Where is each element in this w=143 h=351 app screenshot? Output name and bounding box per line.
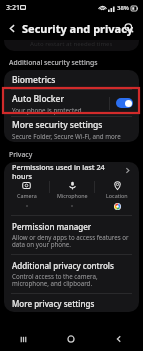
staticText: Permission manager	[12, 221, 92, 232]
button[interactable]: Microphone	[50, 179, 94, 209]
staticText: Security and privacy	[22, 21, 134, 36]
button[interactable]: Camera	[4, 179, 49, 209]
staticText: Biometrics	[12, 74, 56, 86]
button[interactable]: Auto restart at needed times	[4, 40, 139, 51]
staticText: More security settings	[12, 119, 103, 131]
staticText: Camera	[17, 192, 37, 199]
staticText: More privacy settings	[12, 298, 95, 309]
staticText: Permissions used in last 24 hours	[12, 162, 124, 179]
staticText: Additional security settings	[9, 58, 98, 67]
button[interactable]: Biometrics	[4, 70, 139, 89]
button[interactable]: Location	[95, 179, 139, 210]
button[interactable]: More privacy settings	[4, 294, 139, 312]
button[interactable]: Permission manager	[4, 216, 139, 254]
button[interactable]: Auto Blocker	[4, 90, 139, 116]
staticText: Secure Folder, Secure Wi-Fi, and more	[12, 132, 121, 140]
staticText: Microphone	[57, 192, 88, 199]
button[interactable]: More security settings	[4, 117, 139, 142]
button[interactable]: Search	[119, 18, 139, 38]
button[interactable]: Recents	[0, 327, 47, 351]
button[interactable]: Permissions used in last 24 hours	[4, 162, 139, 179]
staticText: 3:21	[6, 3, 20, 13]
button[interactable]: Auto Blocker toggle	[110, 90, 139, 116]
staticText: Auto restart at needed times	[30, 40, 113, 48]
staticText: Auto Blocker	[12, 93, 65, 105]
staticText: 38%	[117, 4, 129, 12]
button[interactable]: Back	[95, 327, 143, 351]
staticText: Allow or deny apps to access features or…	[12, 233, 131, 249]
staticText: Privacy	[9, 150, 33, 159]
button[interactable]: Additional privacy controls	[4, 255, 139, 293]
staticText: Control access to the camera, microphone…	[12, 272, 131, 288]
staticText: Additional privacy controls	[12, 260, 114, 271]
button[interactable]: Home	[47, 327, 95, 351]
staticText: Location	[106, 192, 128, 199]
button[interactable]: Back	[2, 18, 22, 38]
staticText: Your phone is protected.	[12, 106, 84, 114]
